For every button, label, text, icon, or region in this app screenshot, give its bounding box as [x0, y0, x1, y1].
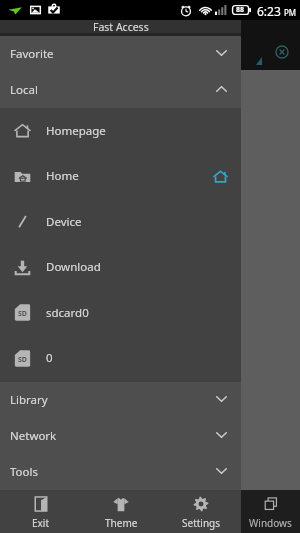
button[interactable]: Settings: [161, 490, 241, 533]
staticText: SD: [18, 355, 27, 365]
staticText: Download: [46, 259, 101, 275]
button[interactable]: Home: [0, 153, 241, 199]
staticText: Theme: [105, 516, 138, 530]
button[interactable]: Library: [0, 382, 241, 418]
staticText: Device: [46, 214, 82, 230]
button[interactable]: Homepage: [0, 108, 241, 153]
staticText: Tools: [10, 464, 38, 480]
button[interactable]: Theme: [81, 490, 161, 533]
button[interactable]: Network: [0, 418, 241, 454]
staticText: Fast Access: [93, 20, 149, 33]
staticText: PM: [284, 7, 297, 18]
staticText: Network: [10, 428, 57, 444]
button[interactable]: Windows: [241, 490, 300, 533]
staticText: Homepage: [46, 123, 106, 139]
button[interactable]: Exit: [0, 490, 81, 533]
staticText: SD: [18, 309, 27, 319]
button[interactable]: SD: [0, 335, 241, 381]
staticText: Exit: [32, 516, 50, 530]
staticText: sdcard0: [46, 305, 89, 321]
staticText: 88: [236, 5, 245, 15]
staticText: Settings: [182, 516, 221, 530]
staticText: Windows: [249, 516, 292, 530]
button[interactable]: Device: [0, 199, 241, 244]
button[interactable]: SD: [0, 290, 241, 335]
button[interactable]: Close: [275, 45, 289, 59]
button[interactable]: Local: [0, 72, 241, 108]
staticText: Home: [46, 168, 79, 184]
staticText: Library: [10, 392, 48, 408]
staticText: 0: [46, 350, 53, 366]
staticText: 6:23: [257, 3, 281, 19]
staticText: Favorite: [10, 46, 54, 62]
staticText: Local: [10, 82, 38, 98]
button[interactable]: Tools: [0, 454, 241, 490]
button[interactable]: Download: [0, 244, 241, 290]
button[interactable]: Favorite: [0, 36, 241, 72]
